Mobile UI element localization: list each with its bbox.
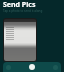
staticText: Send Pics xyxy=(3,0,36,10)
staticText: Tap a photo to send it along xyxy=(3,9,43,13)
button[interactable] xyxy=(3,18,37,62)
button[interactable]: Shutter xyxy=(29,64,35,70)
button[interactable]: Switch camera xyxy=(53,65,58,70)
button[interactable]: Gallery xyxy=(6,65,11,70)
